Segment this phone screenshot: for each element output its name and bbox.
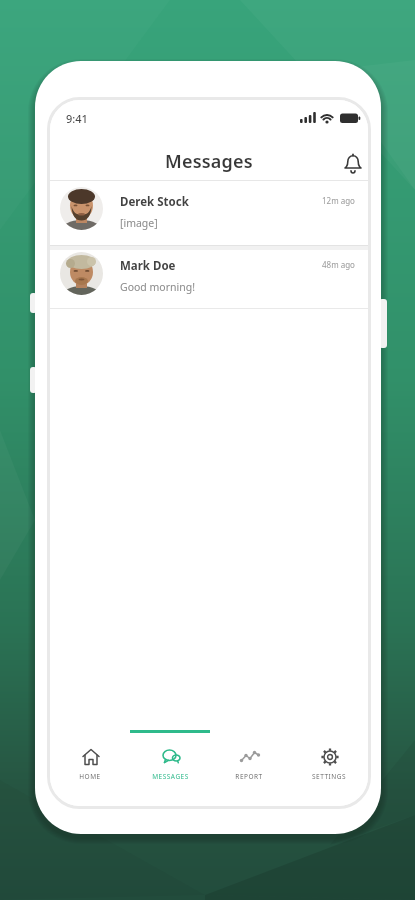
staticText: SETTINGS bbox=[312, 772, 346, 781]
button[interactable]: Derek Stock bbox=[50, 181, 368, 245]
button[interactable]: HOME bbox=[50, 733, 130, 795]
staticText: Messages bbox=[165, 149, 253, 174]
staticText: Good morning! bbox=[120, 280, 196, 294]
button[interactable]: Mark Doe bbox=[50, 250, 368, 308]
button[interactable]: MESSAGES bbox=[130, 733, 210, 795]
staticText: Mark Doe bbox=[120, 258, 176, 274]
button[interactable]: SETTINGS bbox=[289, 733, 368, 795]
staticText: REPORT bbox=[235, 772, 263, 781]
staticText: Derek Stock bbox=[120, 194, 189, 210]
staticText: [image] bbox=[120, 216, 158, 230]
staticText: 12m ago bbox=[322, 195, 355, 206]
staticText: HOME bbox=[79, 772, 101, 781]
staticText: MESSAGES bbox=[152, 772, 189, 781]
button[interactable]: REPORT bbox=[209, 733, 289, 795]
staticText: 48m ago bbox=[322, 259, 355, 270]
staticText: 9:41 bbox=[66, 111, 88, 126]
button[interactable] bbox=[341, 152, 363, 174]
